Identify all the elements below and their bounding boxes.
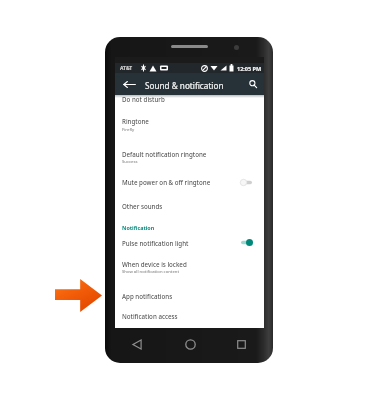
button[interactable]: App notifications	[115, 282, 264, 306]
staticText: 12:05 PM	[237, 65, 262, 72]
staticText: Notification access	[122, 312, 178, 320]
staticText: Sound & notification	[145, 80, 224, 91]
button[interactable]: Other sounds	[115, 194, 264, 216]
button[interactable]: Ringtone	[115, 112, 264, 141]
staticText: When device is locked	[122, 260, 187, 268]
button[interactable]: Home	[178, 332, 202, 356]
button[interactable]: Mute power on & off ringtone	[115, 170, 264, 194]
staticText: Show all notification content	[122, 269, 180, 275]
button[interactable]: Back	[125, 332, 149, 356]
staticText: Default notification ringtone	[122, 150, 207, 158]
button[interactable]: Do not disturb	[115, 95, 264, 112]
button[interactable]: When device is locked	[115, 255, 264, 282]
staticText: Do not disturb	[122, 95, 165, 103]
button[interactable]: Recent apps	[229, 332, 253, 356]
staticText: Other sounds	[122, 202, 163, 210]
staticText: Ringtone	[122, 117, 149, 125]
staticText: Mute power on & off ringtone	[122, 178, 211, 186]
button[interactable]: Notification access	[115, 306, 264, 328]
staticText: Firefly	[122, 127, 135, 133]
staticText: AT&T	[120, 65, 133, 72]
staticText: Success	[122, 159, 138, 165]
button[interactable]: Default notification ringtone	[115, 142, 264, 170]
staticText: Pulse notification light	[122, 239, 189, 247]
staticText: Notification	[122, 224, 155, 231]
button[interactable]: Pulse notification light	[115, 235, 264, 256]
button[interactable]: Back	[119, 74, 139, 94]
button[interactable]: Search	[244, 74, 262, 94]
staticText: App notifications	[122, 292, 173, 300]
